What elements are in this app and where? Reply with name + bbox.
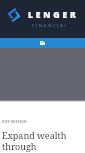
staticText: OUR MISSION [2,120,27,124]
staticText: Expand wealth through [2,129,74,152]
other: Image placeholder [40,41,45,45]
staticText: FINANCIAL [32,23,69,29]
staticText: LENGER [28,9,79,21]
